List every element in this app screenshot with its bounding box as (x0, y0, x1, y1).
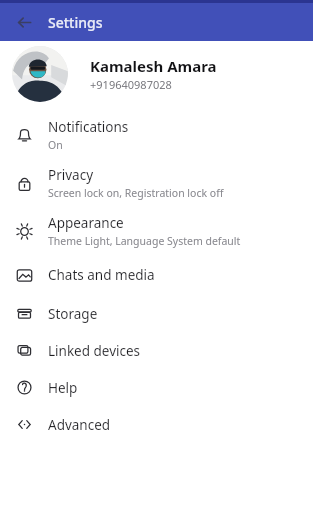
staticText: Appearance (48, 214, 124, 232)
button[interactable]: Privacy (0, 159, 313, 207)
staticText: Linked devices (48, 342, 141, 360)
staticText: On (48, 138, 63, 152)
staticText: Help (48, 379, 78, 397)
staticText: +919640987028 (90, 77, 172, 92)
button[interactable]: Back (0, 3, 48, 41)
staticText: Theme Light, Language System default (48, 234, 241, 248)
staticText: Notifications (48, 118, 129, 136)
staticText: Kamalesh Amara (90, 56, 217, 76)
button[interactable]: Help (0, 369, 313, 406)
button[interactable]: Appearance (0, 207, 313, 255)
staticText: Settings (48, 13, 103, 32)
staticText: Chats and media (48, 266, 155, 284)
button[interactable]: Kamalesh Amara (0, 41, 313, 107)
button[interactable]: Advanced (0, 406, 313, 443)
staticText: Privacy (48, 166, 94, 184)
staticText: Storage (48, 305, 98, 323)
button[interactable]: Chats and media (0, 255, 313, 295)
button[interactable]: Storage (0, 295, 313, 332)
staticText: Advanced (48, 416, 111, 434)
button[interactable]: Notifications (0, 111, 313, 159)
button[interactable]: Linked devices (0, 332, 313, 369)
staticText: Screen lock on, Registration lock off (48, 186, 224, 200)
